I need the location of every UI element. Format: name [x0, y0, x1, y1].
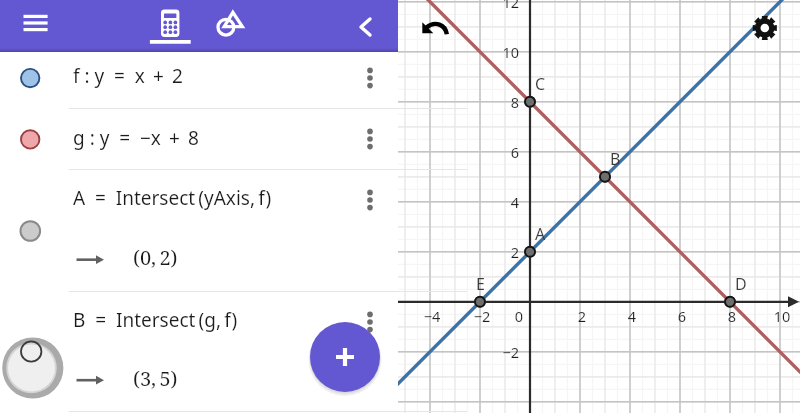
button[interactable]: Calculator — [145, 0, 195, 52]
staticText: 0 — [499, 306, 539, 326]
staticText: 10 — [762, 306, 800, 326]
staticText: 6 — [662, 306, 702, 326]
staticText: 4 — [612, 306, 652, 326]
staticText: −4 — [412, 306, 452, 326]
staticText: 8 — [479, 92, 519, 112]
button[interactable]: Menu — [18, 8, 54, 44]
button[interactable]: More options — [360, 127, 384, 151]
button[interactable]: More options — [360, 66, 384, 90]
staticText: −2 — [462, 306, 502, 326]
staticText: (3, 5) — [133, 365, 178, 392]
staticText: 4 — [479, 192, 519, 212]
staticText: 6 — [479, 142, 519, 162]
staticText: g : y = −x + 8 — [73, 125, 199, 151]
staticText: 10 — [479, 42, 519, 62]
staticText: A — [535, 223, 546, 245]
button[interactable]: Add — [310, 322, 380, 392]
button[interactable]: Geometry — [210, 4, 250, 44]
button[interactable]: B = Intersect (g, f) — [0, 292, 398, 412]
staticText: −2 — [479, 342, 519, 362]
staticText: D — [735, 273, 747, 295]
staticText: 2 — [479, 242, 519, 262]
button[interactable]: More options — [360, 188, 384, 212]
staticText: 12 — [479, 0, 519, 12]
staticText: 2 — [562, 306, 602, 326]
button[interactable]: Back — [348, 10, 380, 42]
button[interactable]: Settings — [748, 11, 782, 45]
staticText: B — [610, 148, 621, 170]
button[interactable]: g : y = −x + 8 — [0, 109, 398, 170]
staticText: A = Intersect (yAxis, f) — [73, 185, 272, 211]
staticText: (0, 2) — [133, 244, 178, 271]
staticText: B = Intersect (g, f) — [73, 307, 238, 333]
button[interactable]: More options — [360, 310, 384, 334]
button[interactable]: A = Intersect (yAxis, f) — [0, 170, 398, 292]
button[interactable]: f : y = x + 2 — [0, 52, 398, 109]
button[interactable]: Undo — [418, 18, 452, 52]
staticText: f : y = x + 2 — [73, 63, 183, 89]
staticText: E — [476, 273, 485, 295]
staticText: C — [535, 73, 546, 95]
staticText: 8 — [712, 306, 752, 326]
